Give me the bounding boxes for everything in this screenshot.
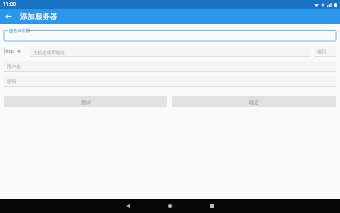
button[interactable]: 确定 (172, 96, 336, 107)
button[interactable]: 服务器名称 (4, 28, 336, 41)
button[interactable]: 端口 (314, 46, 336, 57)
button[interactable]: 用户名 (4, 61, 336, 72)
staticText: 密码 (7, 79, 17, 85)
button[interactable]: Recents (204, 199, 220, 213)
staticText: 测试 (81, 99, 91, 105)
button[interactable]: Home (162, 199, 178, 213)
staticText: 服务器名称 (9, 28, 30, 33)
staticText: 添加服务器 (20, 12, 58, 21)
button[interactable]: 测试 (4, 96, 167, 107)
button[interactable]: 密码 (4, 76, 336, 87)
button[interactable]: Back (120, 199, 136, 213)
staticText: http (4, 48, 14, 55)
staticText: 主机名或IP地址 (33, 49, 65, 55)
staticText: 端口 (317, 49, 327, 55)
button[interactable]: Back (3, 11, 14, 22)
staticText: 确定 (249, 99, 259, 105)
staticText: 用户名 (7, 64, 21, 70)
staticText: 11:00 (3, 1, 16, 8)
button[interactable]: http (4, 46, 27, 57)
button[interactable]: 主机名或IP地址 (30, 46, 311, 57)
